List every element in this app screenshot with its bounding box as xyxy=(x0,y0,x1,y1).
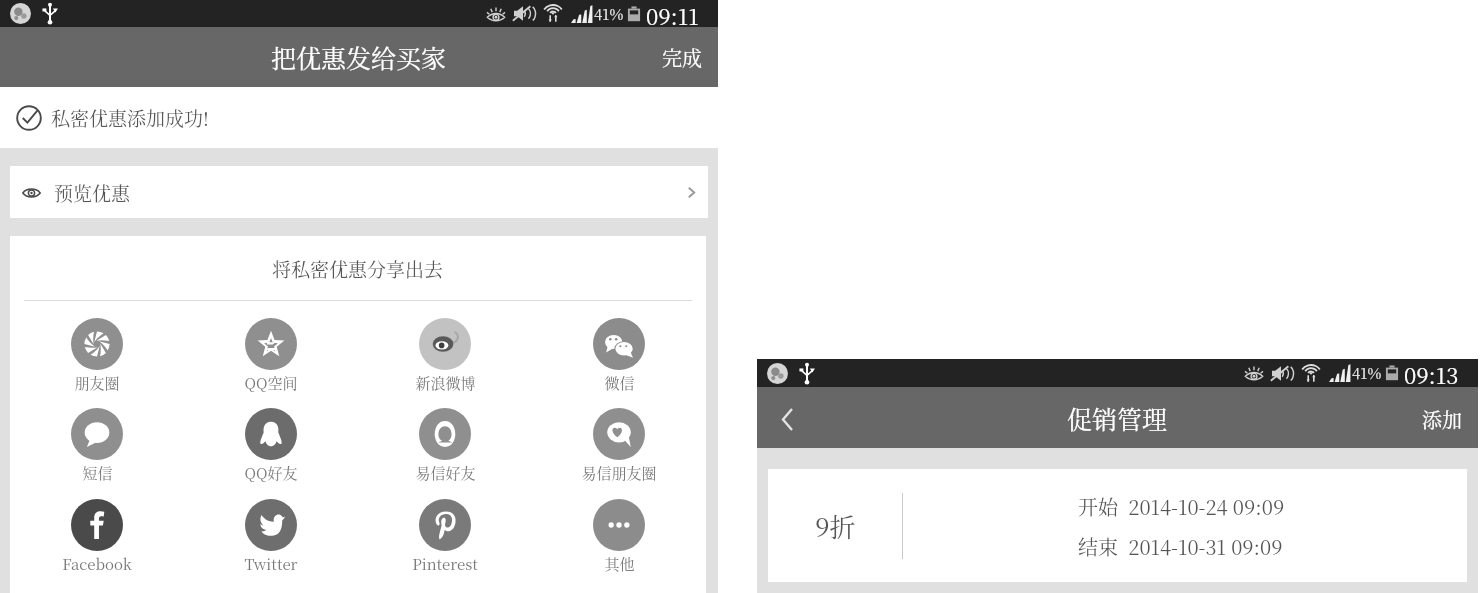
button[interactable]: 短信 xyxy=(10,408,184,484)
button[interactable]: 预览优惠 xyxy=(10,166,708,218)
button[interactable]: 易信朋友圈 xyxy=(532,408,706,484)
staticText: Twitter xyxy=(244,553,298,575)
button[interactable]: Back xyxy=(757,392,808,443)
button[interactable]: Twitter xyxy=(184,499,358,575)
button[interactable]: 朋友圈 xyxy=(10,318,184,394)
staticText: 41% xyxy=(594,3,624,25)
button[interactable]: 其他 xyxy=(532,499,706,575)
staticText: 微信 xyxy=(604,372,635,394)
staticText: 09:13 xyxy=(1404,359,1459,387)
button[interactable]: 9折 xyxy=(768,469,1467,582)
staticText: 9折 xyxy=(815,507,856,544)
staticText: 新浪微博 xyxy=(415,372,476,394)
button[interactable]: 微信 xyxy=(532,318,706,394)
staticText: 预览优惠 xyxy=(54,179,131,206)
button[interactable]: 新浪微博 xyxy=(358,318,532,394)
button[interactable]: Pinterest xyxy=(358,499,532,575)
staticText: 易信好友 xyxy=(415,462,476,484)
staticText: 朋友圈 xyxy=(74,372,120,394)
button[interactable]: 易信好友 xyxy=(358,408,532,484)
staticText: 其他 xyxy=(604,553,635,575)
button[interactable]: QQ空间 xyxy=(184,318,358,394)
staticText: 41% xyxy=(1352,362,1382,384)
staticText: 促销管理 xyxy=(1067,400,1168,436)
staticText: 添加 xyxy=(1422,405,1462,434)
button[interactable]: 添加 xyxy=(1414,393,1470,442)
staticText: QQ好友 xyxy=(244,462,298,484)
button[interactable]: QQ好友 xyxy=(184,408,358,484)
button[interactable]: 完成 xyxy=(654,33,710,82)
staticText: 把优惠发给买家 xyxy=(271,39,447,75)
staticText: Facebook xyxy=(62,553,132,575)
staticText: 将私密优惠分享出去 xyxy=(272,255,444,282)
staticText: 结束 2014-10-31 09:09 xyxy=(1078,532,1283,561)
staticText: 完成 xyxy=(662,43,702,72)
staticText: Pinterest xyxy=(412,553,478,575)
staticText: 09:11 xyxy=(646,0,699,27)
staticText: 易信朋友圈 xyxy=(581,462,657,484)
staticText: 开始 2014-10-24 09:09 xyxy=(1078,492,1285,521)
button[interactable]: Facebook xyxy=(10,499,184,575)
staticText: QQ空间 xyxy=(244,372,298,394)
staticText: 私密优惠添加成功! xyxy=(51,104,209,131)
staticText: 短信 xyxy=(82,462,113,484)
